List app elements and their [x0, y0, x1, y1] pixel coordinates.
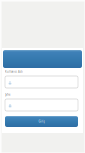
button[interactable]: Giriş — [5, 116, 78, 127]
staticText: Kullanıcı Adı — [5, 70, 23, 73]
staticText: Şifre — [5, 93, 11, 96]
staticText: Giriş — [38, 120, 44, 123]
